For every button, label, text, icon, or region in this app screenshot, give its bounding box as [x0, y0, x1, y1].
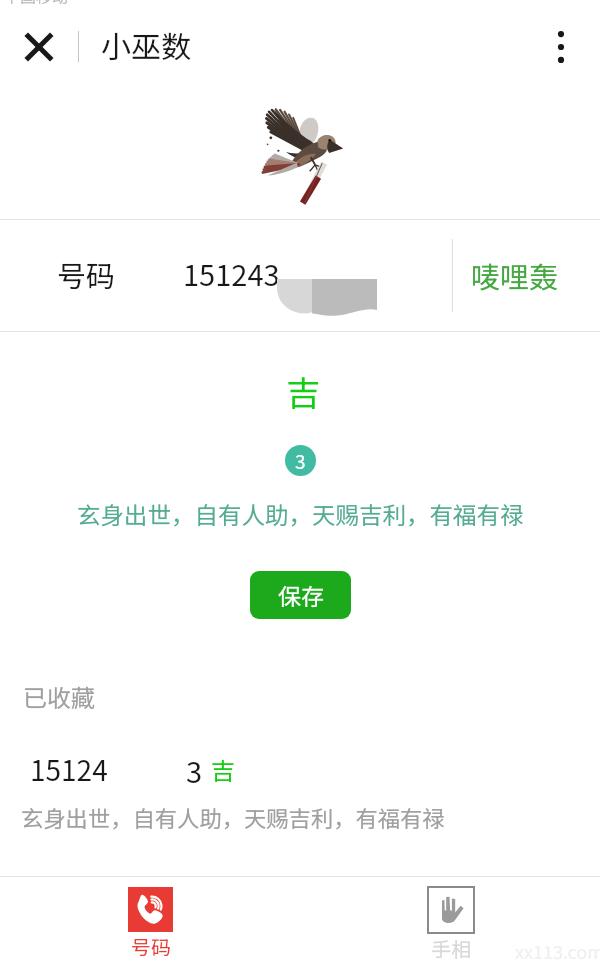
staticText: 号码 — [57, 253, 116, 295]
staticText: 玄身出世，自有人助，天赐吉利，有福有禄 — [77, 497, 524, 531]
staticText: 号码 — [131, 932, 171, 961]
staticText: 唛哩轰 — [471, 254, 559, 296]
staticText: xx113.com — [515, 938, 600, 964]
staticText: 已收藏 — [23, 679, 95, 714]
staticText: 吉 — [211, 752, 235, 787]
staticText: 小巫数 — [101, 23, 191, 66]
staticText: 玄身出世，自有人助，天赐吉利，有福有禄 — [21, 801, 445, 833]
staticText: 151243 — [183, 252, 280, 294]
button[interactable]: 15124 — [0, 744, 600, 792]
button[interactable]: 号码 — [75, 880, 225, 969]
staticText: 吉 — [286, 367, 320, 416]
staticText: 15124 — [30, 749, 108, 790]
staticText: 3 — [295, 447, 306, 475]
button[interactable]: More options — [536, 22, 586, 72]
button[interactable]: 手相 — [376, 880, 526, 969]
staticText: 3 — [186, 749, 203, 791]
button[interactable]: 保存 — [250, 571, 351, 619]
staticText: 中国移动 — [4, 0, 69, 7]
staticText: 保存 — [278, 578, 324, 611]
staticText: 手相 — [431, 934, 471, 963]
button[interactable]: Close — [14, 22, 64, 72]
